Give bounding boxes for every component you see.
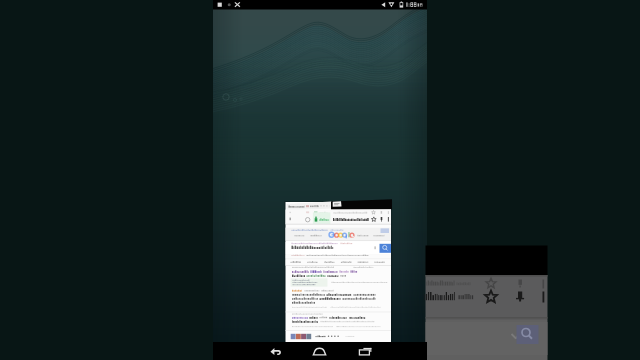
- button[interactable]: [0, 0, 640, 360]
